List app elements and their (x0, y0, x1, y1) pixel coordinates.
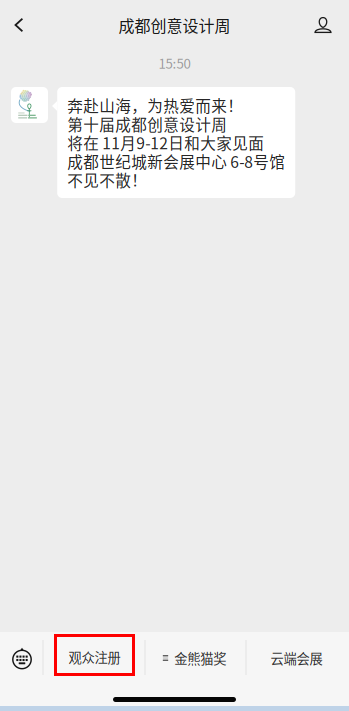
button[interactable]: 观众注册 (54, 634, 135, 676)
staticText: 奔赴山海，为热爱而来！ (67, 94, 243, 117)
staticText: 成都世纪城新会展中心 6-8号馆 (67, 150, 285, 172)
staticText: 云端会展 (270, 648, 322, 668)
staticText: 第十届成都创意设计周 (67, 113, 227, 135)
staticText: 观众注册 (68, 647, 120, 667)
button[interactable]: 金熊猫奖 (144, 636, 245, 680)
button[interactable]: Back (4, 0, 34, 50)
staticText: 成都创意设计周 (118, 13, 230, 37)
staticText: 将在 11月9-12日和大家见面 (67, 131, 264, 154)
button[interactable]: Contact profile (306, 0, 340, 50)
staticText: 金熊猫奖 (174, 648, 226, 668)
staticText: 15:50 (158, 53, 190, 73)
button[interactable]: 云端会展 (245, 636, 348, 680)
staticText: 不见不散！ (67, 168, 147, 191)
button[interactable]: Keyboard (1, 637, 43, 681)
